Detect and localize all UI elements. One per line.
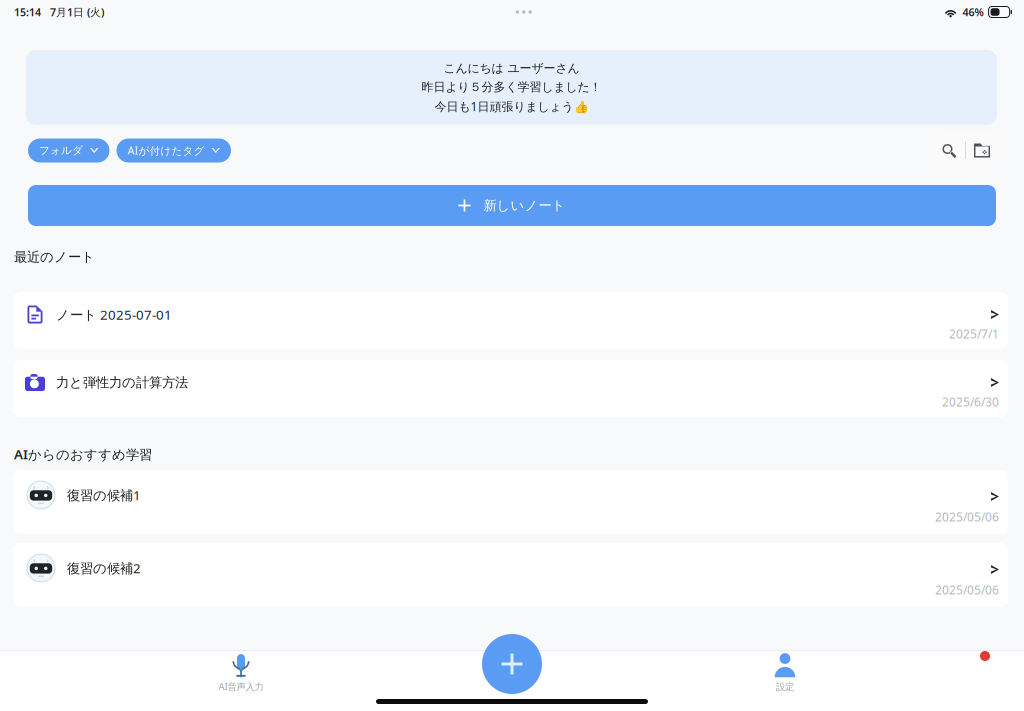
staticText: 2025/05/06	[935, 582, 999, 598]
button[interactable]: AI音声入力	[161, 652, 321, 694]
button[interactable]: 設定	[705, 652, 865, 694]
staticText: AIからのおすすめ学習	[14, 445, 152, 463]
button[interactable]: 新規作成	[482, 634, 542, 694]
button[interactable]: 検索	[933, 134, 965, 167]
staticText: 2025/7/1	[949, 326, 999, 342]
button[interactable]: ノート 2025-07-01	[13, 292, 1008, 349]
staticText: AIが付けたタグ	[127, 143, 204, 158]
button[interactable]: フォルダ	[28, 138, 109, 162]
staticText: 15:14 7月1日 (火)	[14, 5, 104, 19]
button[interactable]: 力と弾性力の計算方法	[13, 360, 1008, 417]
button[interactable]: AIが付けたタグ	[116, 138, 231, 162]
button[interactable]: 復習の候補2	[13, 543, 1008, 607]
staticText: フォルダ	[39, 144, 83, 157]
button[interactable]: 復習の候補1	[13, 470, 1008, 534]
staticText: 設定	[776, 681, 794, 693]
staticText: 新しいノート	[483, 197, 565, 214]
staticText: 2025/05/06	[935, 509, 999, 525]
staticText: ノート 2025-07-01	[56, 306, 172, 323]
button[interactable]: 新しいフォルダ	[966, 134, 998, 167]
staticText: 今日も1日頑張りましょう👍	[434, 98, 588, 114]
button[interactable]: 新しいノート	[28, 185, 996, 226]
staticText: 2025/6/30	[942, 394, 999, 410]
staticText: 46%	[963, 5, 984, 19]
staticText: こんにちは ユーザーさん	[443, 61, 579, 75]
staticText: 力と弾性力の計算方法	[56, 374, 188, 391]
staticText: 昨日より５分多く学習しました！	[421, 79, 601, 94]
staticText: 最近のノート	[14, 249, 95, 265]
staticText: 復習の候補2	[67, 559, 141, 577]
staticText: AI音声入力	[218, 680, 263, 693]
staticText: 復習の候補1	[67, 486, 141, 504]
